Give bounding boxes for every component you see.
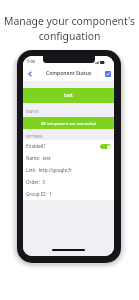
button[interactable]: test — [23, 88, 114, 103]
staticText: All component are connected — [41, 121, 97, 126]
staticText: test — [64, 92, 73, 99]
staticText: STATUS — [26, 109, 39, 114]
button[interactable]: Name: test — [23, 152, 114, 164]
staticText: Enabled? — [26, 143, 46, 149]
staticText: SETTINGS — [26, 134, 43, 139]
staticText: Group ID: 1 — [26, 191, 52, 197]
staticText: Component Status — [46, 70, 92, 77]
button[interactable]: Enabled? — [23, 140, 114, 152]
staticText: Manage your component's configuation — [0, 14, 139, 43]
staticText: Order: 3 — [26, 179, 45, 185]
staticText: Link: http://google.fr — [26, 167, 72, 173]
button[interactable]: All component are connected — [23, 117, 114, 129]
button[interactable]: Group ID: 1 — [23, 188, 114, 200]
button[interactable]: Save — [105, 71, 111, 77]
staticText: Name: test — [26, 155, 51, 161]
button[interactable]: Back — [26, 70, 34, 78]
staticText: 7:05 — [27, 59, 35, 64]
button[interactable]: Link: http://google.fr — [23, 164, 114, 176]
button[interactable]: Order: 3 — [23, 176, 114, 188]
